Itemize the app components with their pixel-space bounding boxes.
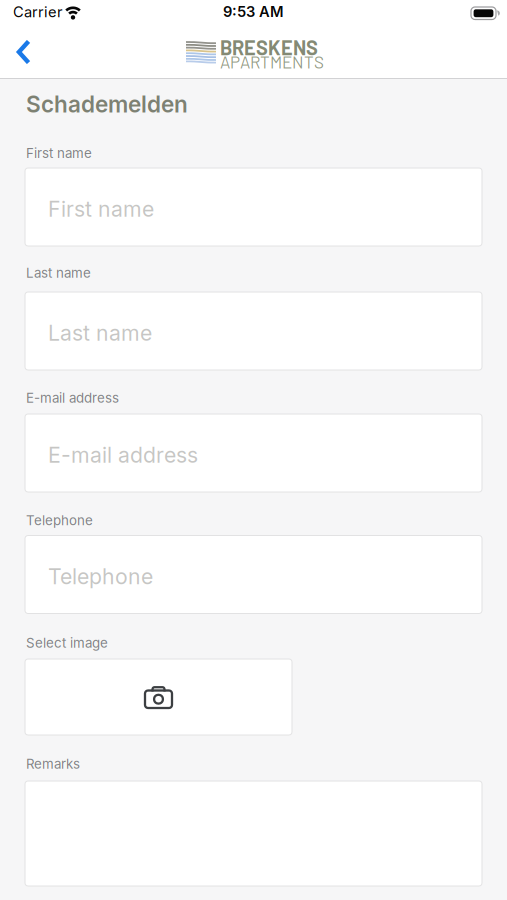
staticText: First name bbox=[48, 196, 154, 222]
button[interactable]: E-mail address bbox=[25, 414, 482, 492]
staticText: Last name bbox=[48, 320, 152, 346]
staticText: Last name bbox=[26, 265, 91, 281]
button[interactable] bbox=[3, 32, 43, 72]
staticText: First name bbox=[26, 145, 92, 161]
staticText: Select image bbox=[26, 635, 108, 651]
staticText: Telephone bbox=[48, 564, 153, 589]
staticText: Remarks bbox=[26, 756, 80, 772]
button[interactable]: Telephone bbox=[25, 535, 482, 613]
staticText: BRESKENS bbox=[220, 35, 318, 59]
button[interactable]: First name bbox=[25, 168, 482, 246]
button[interactable] bbox=[25, 659, 292, 735]
button[interactable]: Last name bbox=[25, 292, 482, 370]
staticText: 9:53 AM bbox=[223, 3, 284, 20]
staticText: Schademelden bbox=[26, 91, 188, 118]
staticText: E-mail address bbox=[26, 390, 119, 406]
staticText: APARTMENTS bbox=[220, 51, 324, 72]
staticText: Telephone bbox=[26, 513, 93, 528]
staticText: Carrier bbox=[13, 3, 63, 21]
staticText: E-mail address bbox=[48, 442, 198, 468]
